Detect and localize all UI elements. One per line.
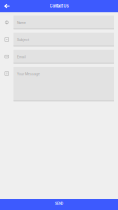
staticText: Contact Us	[49, 3, 68, 9]
button[interactable]: Name	[0, 16, 118, 29]
staticText: Your Message	[17, 72, 40, 76]
button[interactable]: Your Message	[0, 67, 118, 101]
staticText: Subject	[17, 38, 29, 42]
button[interactable]: SEND	[0, 199, 118, 210]
button[interactable]: Back	[0, 0, 14, 12]
button[interactable]: Email	[0, 50, 118, 63]
staticText: Name	[17, 21, 26, 25]
staticText: Email	[17, 55, 26, 59]
button[interactable]: Subject	[0, 33, 118, 46]
staticText: SEND	[55, 202, 63, 206]
